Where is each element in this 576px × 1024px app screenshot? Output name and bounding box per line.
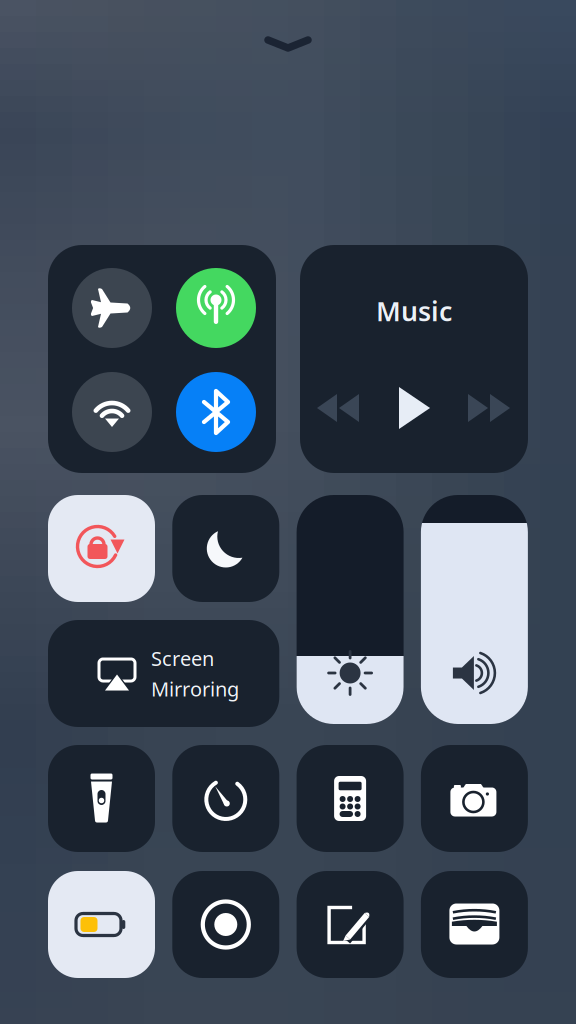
- staticText: Music: [376, 293, 452, 329]
- button[interactable]: Airplane Mode: [72, 268, 152, 348]
- staticText: Screen: [151, 645, 214, 671]
- button[interactable]: Screen Recording: [172, 871, 279, 978]
- button[interactable]: Low Power Mode: [48, 871, 155, 978]
- button[interactable]: Cellular Data: [176, 268, 256, 348]
- button[interactable]: Volume: [421, 495, 528, 724]
- button[interactable]: Play: [396, 386, 432, 430]
- button[interactable]: Flashlight: [48, 745, 155, 852]
- button[interactable]: Timer: [172, 745, 279, 852]
- button[interactable]: Close Control Center: [248, 20, 328, 68]
- button[interactable]: Do Not Disturb: [172, 495, 279, 602]
- button[interactable]: Bluetooth: [176, 372, 256, 452]
- button[interactable]: Wallet: [421, 871, 528, 978]
- button[interactable]: Wi-Fi: [72, 372, 152, 452]
- staticText: Mirroring: [151, 675, 239, 702]
- button[interactable]: Notes: [297, 871, 404, 978]
- button[interactable]: Screen: [48, 620, 279, 727]
- button[interactable]: Rotation Lock: [48, 495, 155, 602]
- button[interactable]: Previous Track: [316, 393, 362, 423]
- button[interactable]: Camera: [421, 745, 528, 852]
- button[interactable]: Next Track: [465, 393, 511, 423]
- button[interactable]: Calculator: [297, 745, 404, 852]
- button[interactable]: Brightness: [297, 495, 404, 724]
